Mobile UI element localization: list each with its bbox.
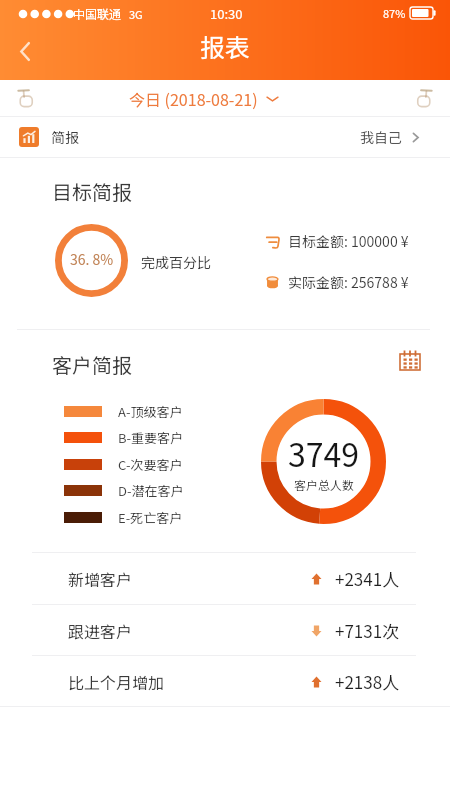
staticText: 今日 (2018-08-21) [129, 87, 258, 110]
button[interactable]: 跟进客户 [0, 605, 450, 656]
staticText: 跟进客户 [68, 619, 133, 642]
staticText: 目标简报 [52, 177, 132, 206]
staticText: 3749 [288, 430, 360, 476]
staticText: B-重要客户 [118, 428, 184, 447]
staticText: 简报 [51, 127, 79, 147]
button[interactable]: Calendar [395, 345, 425, 375]
staticText: C-次要客户 [118, 455, 183, 474]
staticText: 客户总人数 [294, 476, 355, 493]
button[interactable]: Back [0, 24, 50, 72]
button[interactable]: 新增客户 [0, 553, 450, 604]
button[interactable]: 比上个月增加 [0, 656, 450, 707]
staticText: E-死亡客户 [118, 508, 183, 527]
staticText: 目标金额: 100000 ¥ [288, 231, 409, 251]
staticText: 比上个月增加 [68, 670, 165, 693]
staticText: 实际金额: 256788 ¥ [288, 272, 409, 292]
staticText: A-顶级客户 [118, 402, 183, 421]
staticText: 报表 [200, 28, 251, 64]
staticText: +7131次 [335, 618, 400, 643]
staticText: +2341人 [335, 566, 400, 591]
staticText: 客户简报 [52, 350, 132, 379]
staticText: 10:30 [210, 4, 243, 23]
staticText: 中国联通 [73, 5, 122, 22]
staticText: 3G [129, 6, 143, 22]
button[interactable]: 今日 (2018-08-21) [129, 87, 279, 110]
staticText: D-潜在客户 [118, 481, 184, 500]
button[interactable]: 简报 [0, 117, 450, 157]
staticText: 87% [383, 5, 406, 21]
staticText: 36. 8% [70, 249, 114, 269]
staticText: 我自己 [360, 127, 402, 147]
staticText: 新增客户 [68, 567, 133, 590]
staticText: +2138人 [335, 669, 400, 694]
staticText: 完成百分比 [141, 252, 211, 272]
